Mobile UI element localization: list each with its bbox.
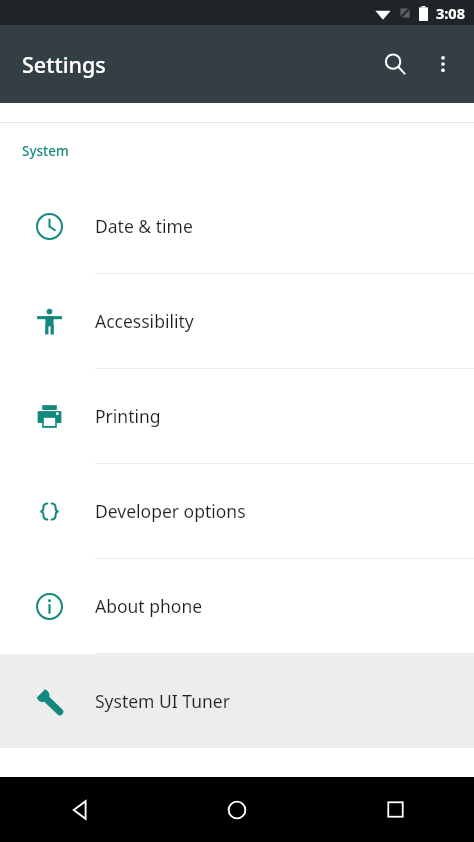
staticText: 3:08	[436, 3, 465, 23]
staticText: Developer options	[95, 499, 246, 523]
staticText: Settings	[22, 50, 106, 79]
button[interactable]: Search	[372, 41, 418, 87]
button[interactable]: Back	[0, 777, 158, 842]
button[interactable]: System UI Tuner	[0, 654, 474, 748]
button[interactable]: Accessibility	[0, 274, 474, 368]
button[interactable]: Developer options	[0, 464, 474, 558]
staticText: Printing	[95, 404, 161, 428]
staticText: Date & time	[95, 214, 193, 238]
button[interactable]: More options	[420, 41, 466, 87]
staticText: About phone	[95, 594, 203, 618]
button[interactable]: Recent apps	[316, 777, 474, 842]
button[interactable]: Home	[158, 777, 316, 842]
button[interactable]: Printing	[0, 369, 474, 463]
button[interactable]: About phone	[0, 559, 474, 653]
staticText: System	[22, 142, 69, 160]
button[interactable]: Date & time	[0, 179, 474, 273]
staticText: System UI Tuner	[95, 689, 230, 713]
staticText: Accessibility	[95, 309, 194, 333]
